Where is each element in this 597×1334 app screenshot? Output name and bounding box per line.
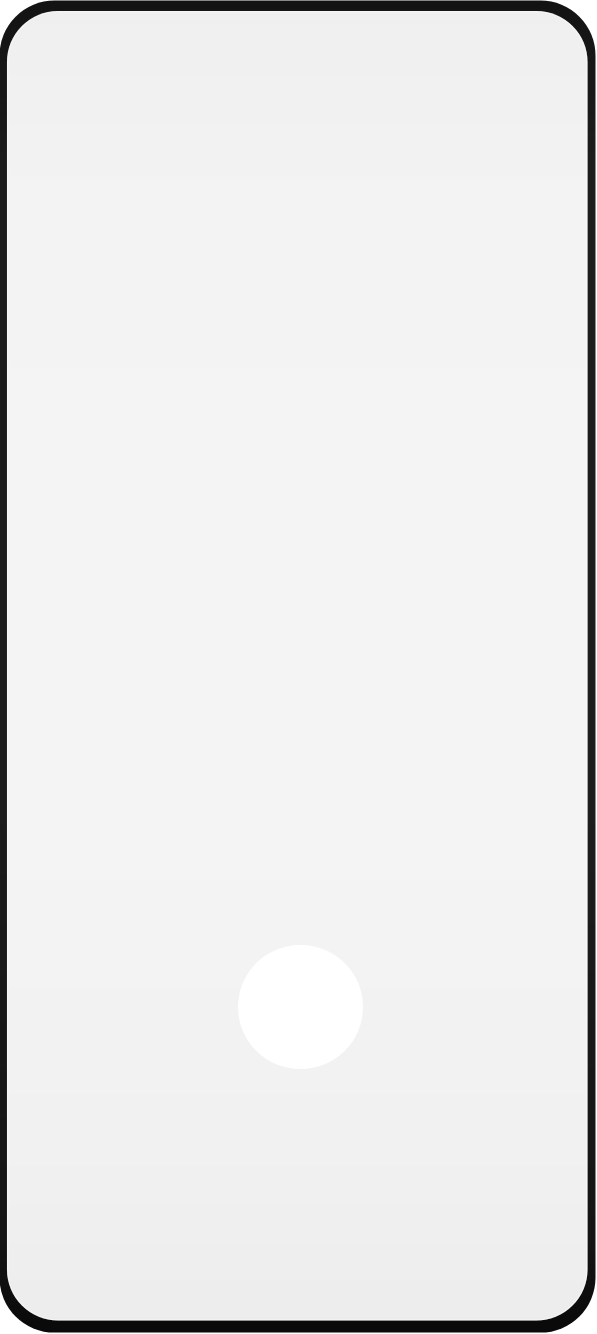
button[interactable]: Record xyxy=(238,945,363,1069)
